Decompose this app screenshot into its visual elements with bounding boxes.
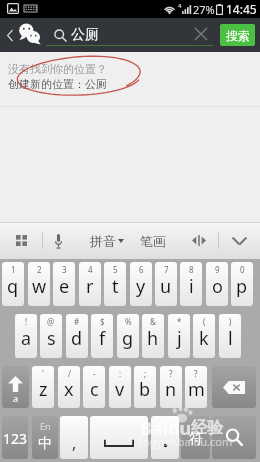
staticText: r [86, 274, 94, 299]
button[interactable]: % [117, 314, 139, 358]
staticText: 123 [3, 429, 28, 448]
button[interactable]: 搜索 [220, 24, 255, 46]
staticText: z [39, 377, 48, 402]
staticText: : [119, 368, 122, 379]
staticText: 3 [62, 264, 67, 275]
button[interactable]: 7 [155, 262, 177, 306]
button[interactable]: Back [4, 18, 16, 52]
staticText: 5 [113, 264, 118, 275]
button[interactable]: 拼音 [90, 222, 124, 259]
button[interactable]: 8 [180, 262, 202, 306]
button[interactable]: ; [134, 366, 156, 408]
staticText: # [74, 316, 80, 327]
button[interactable]: 5 [104, 262, 126, 306]
staticText: d [71, 326, 83, 351]
button[interactable]: 9 [206, 262, 228, 306]
staticText: 4 [178, 2, 182, 10]
staticText: 创建新的位置：公厕 [8, 77, 107, 91]
staticText: / [68, 368, 71, 379]
staticText: 1 [11, 264, 16, 275]
button[interactable]: / [58, 366, 80, 408]
staticText: k [199, 326, 209, 351]
button[interactable]: 3 [53, 262, 75, 306]
staticText: $ [100, 316, 105, 327]
staticText: 8 [189, 264, 194, 275]
staticText: h [147, 326, 159, 351]
button[interactable]: 0 [231, 262, 253, 306]
button[interactable]: @ [40, 314, 62, 358]
staticText: x [64, 377, 74, 402]
staticText: En [40, 420, 51, 432]
staticText: 没有找到你的位置？ [8, 62, 107, 76]
button[interactable]: Resize keyboard [188, 222, 210, 259]
staticText: g [122, 326, 134, 351]
button[interactable]: Voice input [47, 222, 69, 259]
button[interactable]: 笔画 [140, 222, 166, 259]
staticText: ' [42, 368, 44, 379]
staticText: 公厕 [71, 26, 99, 44]
staticText: @ [47, 316, 55, 327]
staticText: 拼音 [90, 233, 116, 249]
button[interactable]: ' [32, 366, 54, 408]
button[interactable]: Keyboard layouts [9, 222, 33, 259]
button[interactable]: 1 [2, 262, 24, 306]
staticText: u [160, 274, 172, 299]
button[interactable]: ? [185, 366, 207, 408]
staticText: Baidu [140, 416, 192, 441]
button[interactable]: ! [15, 314, 37, 358]
button[interactable]: Clear [193, 26, 209, 42]
button[interactable]: # [66, 314, 88, 358]
button[interactable]: ( [193, 314, 215, 358]
staticText: b [139, 377, 151, 402]
staticText: n [165, 377, 177, 402]
button[interactable]: Backspace [212, 366, 256, 408]
button[interactable]: - [83, 366, 105, 408]
button[interactable]: ? [160, 366, 182, 408]
staticText: 0 [240, 264, 245, 275]
staticText: f [99, 326, 106, 351]
staticText: 6 [139, 264, 144, 275]
button[interactable]: Shift [2, 366, 29, 408]
staticText: y [136, 274, 146, 299]
button[interactable]: * [168, 314, 190, 358]
button[interactable]: 4 [79, 262, 101, 306]
button[interactable]: 2 [28, 262, 50, 306]
staticText: q [7, 274, 19, 299]
staticText: i [189, 274, 194, 299]
staticText: 中 [38, 435, 52, 453]
staticText: 经验 [191, 418, 223, 438]
staticText: ? [194, 368, 198, 379]
staticText: 27% [193, 2, 215, 17]
button[interactable]: 6 [130, 262, 152, 306]
staticText: 搜索 [226, 28, 250, 43]
button[interactable]: Switch language [32, 416, 58, 459]
staticText: a [13, 392, 19, 404]
staticText: ? [169, 368, 173, 379]
staticText: * [177, 316, 182, 327]
button[interactable]: , [60, 416, 88, 459]
button[interactable]: Hide keyboard [226, 222, 252, 259]
staticText: s [47, 326, 56, 351]
staticText: p [236, 274, 248, 299]
button[interactable] [151, 416, 179, 459]
button[interactable]: $ [91, 314, 113, 358]
staticText: v [115, 377, 125, 402]
staticText: 笔画 [140, 233, 166, 249]
staticText: ; [144, 368, 147, 379]
button[interactable]: Search [212, 416, 256, 459]
staticText: & [150, 316, 156, 327]
button[interactable]: & [142, 314, 164, 358]
staticText: 14:45 [226, 1, 257, 17]
staticText: 9 [215, 264, 220, 275]
staticText: m [188, 377, 205, 402]
button[interactable]: : [109, 366, 131, 408]
staticText: 7 [164, 264, 169, 275]
button[interactable] [90, 416, 148, 459]
staticText: j [177, 326, 182, 351]
button[interactable]: 123 [2, 416, 28, 459]
staticText: 2 [37, 264, 42, 275]
button[interactable]: ) [219, 314, 241, 358]
button[interactable]: Symbols [181, 416, 210, 459]
staticText: a [21, 326, 32, 351]
staticText: , [72, 432, 77, 454]
